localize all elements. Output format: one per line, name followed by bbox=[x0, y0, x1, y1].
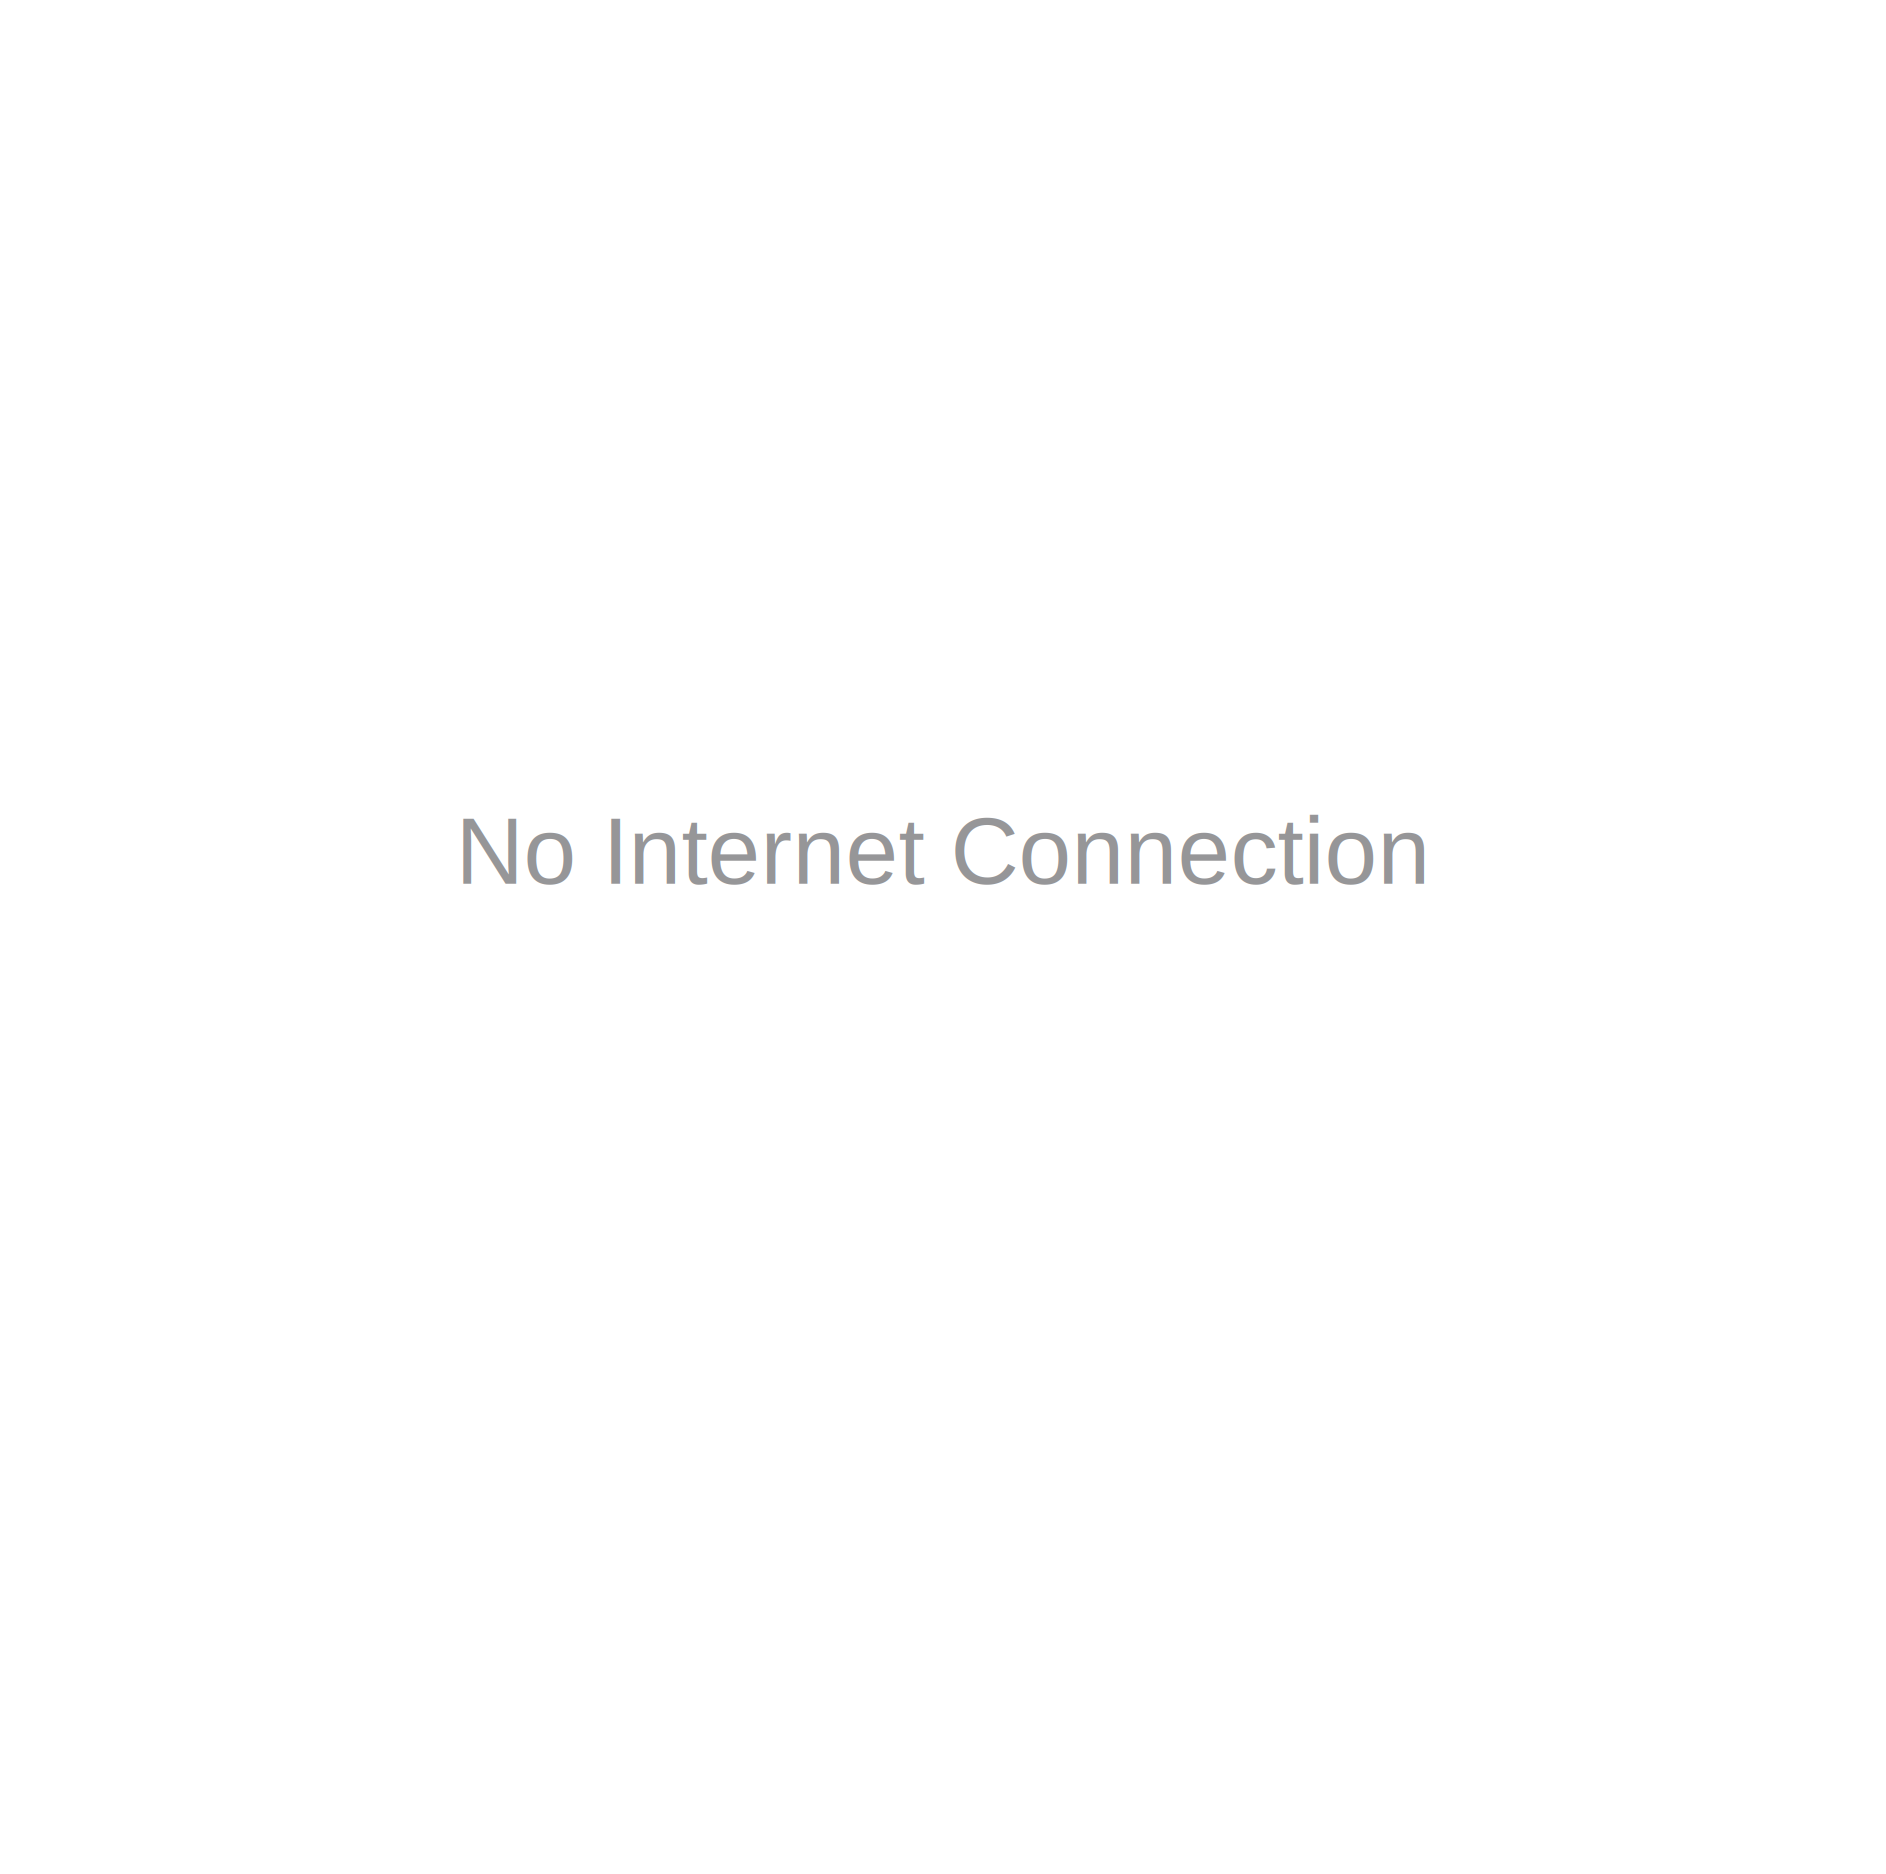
staticText: No Internet Connection bbox=[455, 798, 1430, 904]
